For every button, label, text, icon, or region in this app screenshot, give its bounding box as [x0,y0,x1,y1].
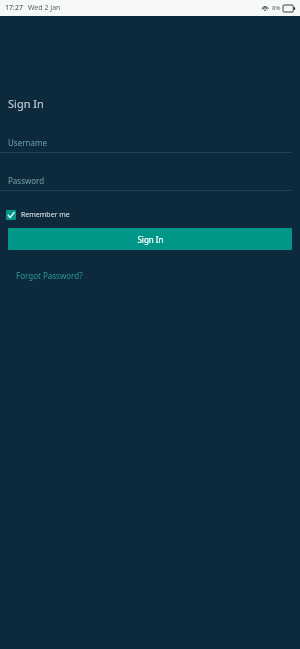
staticText: Forgot Password? [16,270,83,281]
staticText: Username [8,137,47,148]
other: Wi-Fi [261,4,269,12]
button[interactable]: Remember me [6,208,76,222]
staticText: 8% [272,4,281,12]
staticText: Wed 2 Jan [28,3,61,13]
staticText: Remember me [21,210,70,220]
button[interactable]: Sign In [8,228,292,250]
staticText: Password [8,175,45,186]
staticText: 17:27 [5,3,23,13]
other: Battery [283,5,295,12]
button[interactable]: Password [0,175,300,191]
button[interactable]: Username [0,137,300,153]
staticText: Sign In [137,234,164,245]
button[interactable]: Forgot Password? [10,267,89,284]
staticText: Sign In [8,96,44,111]
